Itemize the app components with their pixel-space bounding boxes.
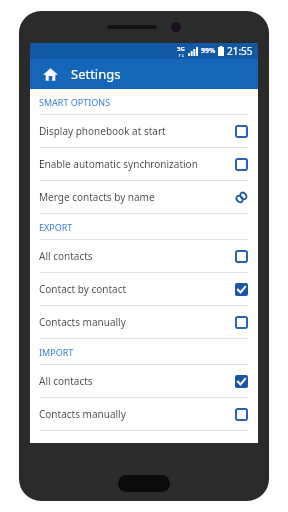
staticText: All contacts	[39, 249, 235, 263]
staticText: Contacts manually	[39, 315, 235, 329]
staticText: SMART OPTIONS	[39, 96, 111, 108]
staticText: EXPORT	[39, 221, 73, 233]
button[interactable]: All contacts	[30, 365, 258, 397]
button[interactable]: Contacts manually	[30, 306, 258, 338]
button[interactable]: Contacts manually	[30, 398, 258, 430]
staticText: Contacts manually	[39, 407, 235, 421]
staticText: IMPORT	[39, 346, 74, 358]
button[interactable]: Home	[39, 63, 61, 85]
staticText: ↑↓	[178, 53, 185, 58]
button[interactable]: Display phonebook at start	[30, 115, 258, 147]
staticText: Contact by contact	[39, 282, 235, 296]
staticText: Merge contacts by name	[39, 190, 234, 204]
button[interactable]: Enable automatic synchronization	[30, 148, 258, 180]
staticText: 21:55	[227, 44, 253, 58]
staticText: 3G	[177, 45, 185, 53]
staticText: Enable automatic synchronization	[39, 157, 235, 171]
staticText: Settings	[71, 65, 121, 83]
staticText: All contacts	[39, 374, 235, 388]
button[interactable]: All contacts	[30, 240, 258, 272]
button[interactable]: Contact by contact	[30, 273, 258, 305]
other: Merge	[234, 190, 248, 204]
staticText: Display phonebook at start	[39, 124, 235, 138]
button[interactable]: Merge contacts by name	[30, 181, 258, 213]
staticText: 99%	[201, 46, 216, 56]
